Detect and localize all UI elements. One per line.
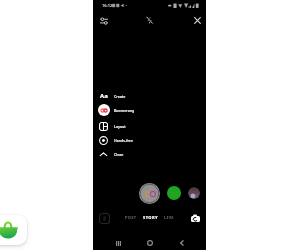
button[interactable]: Profile — [188, 187, 200, 199]
staticText: 16:12 — [102, 3, 113, 8]
staticText: Boomerang — [114, 108, 135, 113]
button[interactable]: Layout — [96, 119, 146, 133]
staticText: Hands-free — [114, 138, 133, 143]
button[interactable]: Gallery — [99, 213, 110, 224]
button[interactable]: Shopping app — [0, 215, 27, 245]
button[interactable]: LIVE — [164, 215, 174, 220]
staticText: Create — [114, 94, 126, 99]
staticText: Aa — [100, 92, 108, 100]
button[interactable]: Recents — [111, 236, 125, 250]
button[interactable]: Flash off — [142, 13, 156, 27]
staticText: Layout — [114, 124, 126, 129]
button[interactable]: Capture — [139, 183, 160, 204]
button[interactable]: Aa — [96, 89, 146, 103]
button[interactable]: Boomerang — [96, 103, 146, 117]
button[interactable]: STORY — [143, 215, 158, 220]
button[interactable]: Close — [96, 147, 146, 161]
button[interactable]: Back — [175, 236, 189, 250]
staticText: Close — [114, 152, 124, 157]
button[interactable]: Hands-free — [96, 133, 146, 147]
button[interactable]: POST — [125, 215, 137, 220]
button[interactable]: Home — [143, 236, 157, 250]
button[interactable]: Effect — [167, 186, 181, 200]
button[interactable]: Switch camera — [190, 213, 200, 223]
button[interactable]: Close — [190, 13, 204, 27]
button[interactable]: Camera settings — [97, 14, 111, 28]
